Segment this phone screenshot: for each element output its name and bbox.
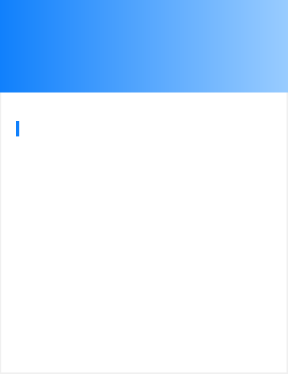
button[interactable]: Text field bbox=[0, 93, 288, 149]
button[interactable]: App bar bbox=[0, 0, 288, 93]
